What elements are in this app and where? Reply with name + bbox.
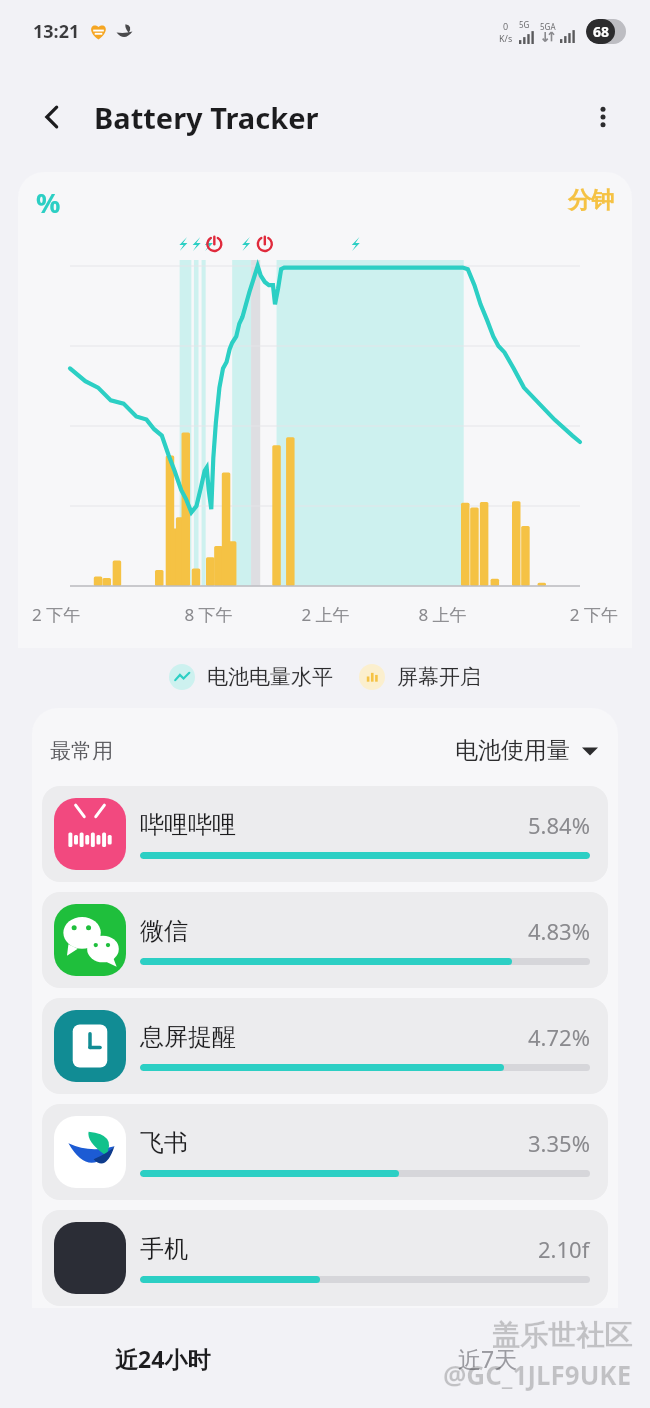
button[interactable]: More options xyxy=(578,92,628,142)
staticText: 4.72% xyxy=(528,1022,590,1052)
staticText: 3.35% xyxy=(528,1128,590,1158)
staticText: K/s xyxy=(499,32,513,44)
staticText: 哔哩哔哩 xyxy=(140,810,236,840)
button[interactable]: 电池电量水平 xyxy=(169,664,333,690)
staticText: 盖乐世社区 xyxy=(492,1318,632,1353)
button[interactable]: Back xyxy=(26,91,78,143)
button[interactable]: 息屏提醒 xyxy=(42,998,608,1094)
staticText: 飞书 xyxy=(140,1128,188,1158)
staticText: 5GA xyxy=(540,21,556,32)
staticText: 13:21 xyxy=(33,19,80,44)
button[interactable]: 电池使用量 xyxy=(451,732,602,769)
staticText: 分钟 xyxy=(568,186,614,215)
button[interactable]: 手机 xyxy=(42,1210,608,1306)
button[interactable]: 微信 xyxy=(42,892,608,988)
button[interactable]: 屏幕开启 xyxy=(359,664,481,690)
staticText: 4.83% xyxy=(528,916,590,946)
staticText: 2 下午 xyxy=(501,603,618,626)
staticText: 68 xyxy=(593,22,610,41)
staticText: 2 下午 xyxy=(32,603,150,626)
staticText: 最常用 xyxy=(50,738,113,764)
staticText: 电池电量水平 xyxy=(207,664,333,690)
button[interactable]: 哔哩哔哩 xyxy=(42,786,608,882)
button[interactable]: 近7天 xyxy=(325,1308,650,1408)
staticText: 5G xyxy=(519,19,530,30)
staticText: 电池使用量 xyxy=(455,736,570,765)
staticText: 近24小时 xyxy=(115,1343,211,1374)
staticText: 手机 xyxy=(140,1234,188,1264)
staticText: @GC_1JLF9UKE xyxy=(443,1357,632,1392)
staticText: 近7天 xyxy=(458,1343,518,1374)
staticText: 2 上午 xyxy=(267,603,384,626)
staticText: 8 下午 xyxy=(150,603,267,626)
staticText: 2.10f xyxy=(538,1234,590,1264)
staticText: 屏幕开启 xyxy=(397,664,481,690)
staticText: 8 上午 xyxy=(384,603,501,626)
button[interactable]: 飞书 xyxy=(42,1104,608,1200)
staticText: 微信 xyxy=(140,916,188,946)
staticText: 5.84% xyxy=(528,810,590,840)
staticText: 息屏提醒 xyxy=(140,1022,236,1052)
staticText: 0 xyxy=(503,20,509,32)
button[interactable]: 近24小时 xyxy=(0,1308,325,1408)
staticText: % xyxy=(36,184,61,221)
staticText: Battery Tracker xyxy=(94,98,319,137)
